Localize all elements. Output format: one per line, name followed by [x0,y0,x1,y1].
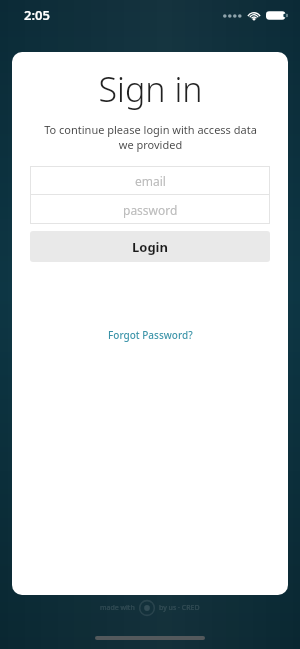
staticText: password [123,202,178,218]
staticText: by us · CRED [159,603,200,613]
staticText: 2:05 [24,6,50,24]
staticText: Sign in [98,66,203,112]
staticText: To continue please login with access dat… [44,122,257,152]
staticText: email [135,173,166,189]
staticText: Forgot Password? [108,328,193,342]
button[interactable]: password [30,195,270,224]
staticText: made with [100,603,135,613]
button[interactable]: Forgot Password? [100,324,201,346]
button[interactable]: email [30,166,270,195]
staticText: Login [132,238,168,256]
button[interactable]: Login [30,231,270,262]
